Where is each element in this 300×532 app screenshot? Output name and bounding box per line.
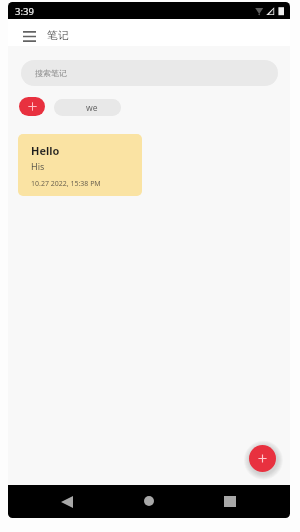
button[interactable]: Home <box>138 490 160 512</box>
button[interactable]: Add note <box>249 445 276 472</box>
staticText: we <box>86 102 98 114</box>
button[interactable]: Recent apps <box>219 490 241 512</box>
button[interactable]: Add category <box>19 97 45 116</box>
button[interactable]: Back <box>56 491 78 513</box>
button[interactable]: Open navigation menu <box>17 24 41 48</box>
staticText: 搜索笔记 <box>35 68 67 78</box>
button[interactable]: 搜索笔记 <box>21 60 278 86</box>
staticText: His <box>31 160 45 172</box>
staticText: 3:39 <box>15 5 34 18</box>
button[interactable]: we <box>54 99 121 116</box>
staticText: 10.27 2022, 15:38 PM <box>31 179 101 189</box>
staticText: Hello <box>31 143 60 158</box>
staticText: 笔记 <box>47 29 69 43</box>
button[interactable]: Hello <box>18 134 142 196</box>
